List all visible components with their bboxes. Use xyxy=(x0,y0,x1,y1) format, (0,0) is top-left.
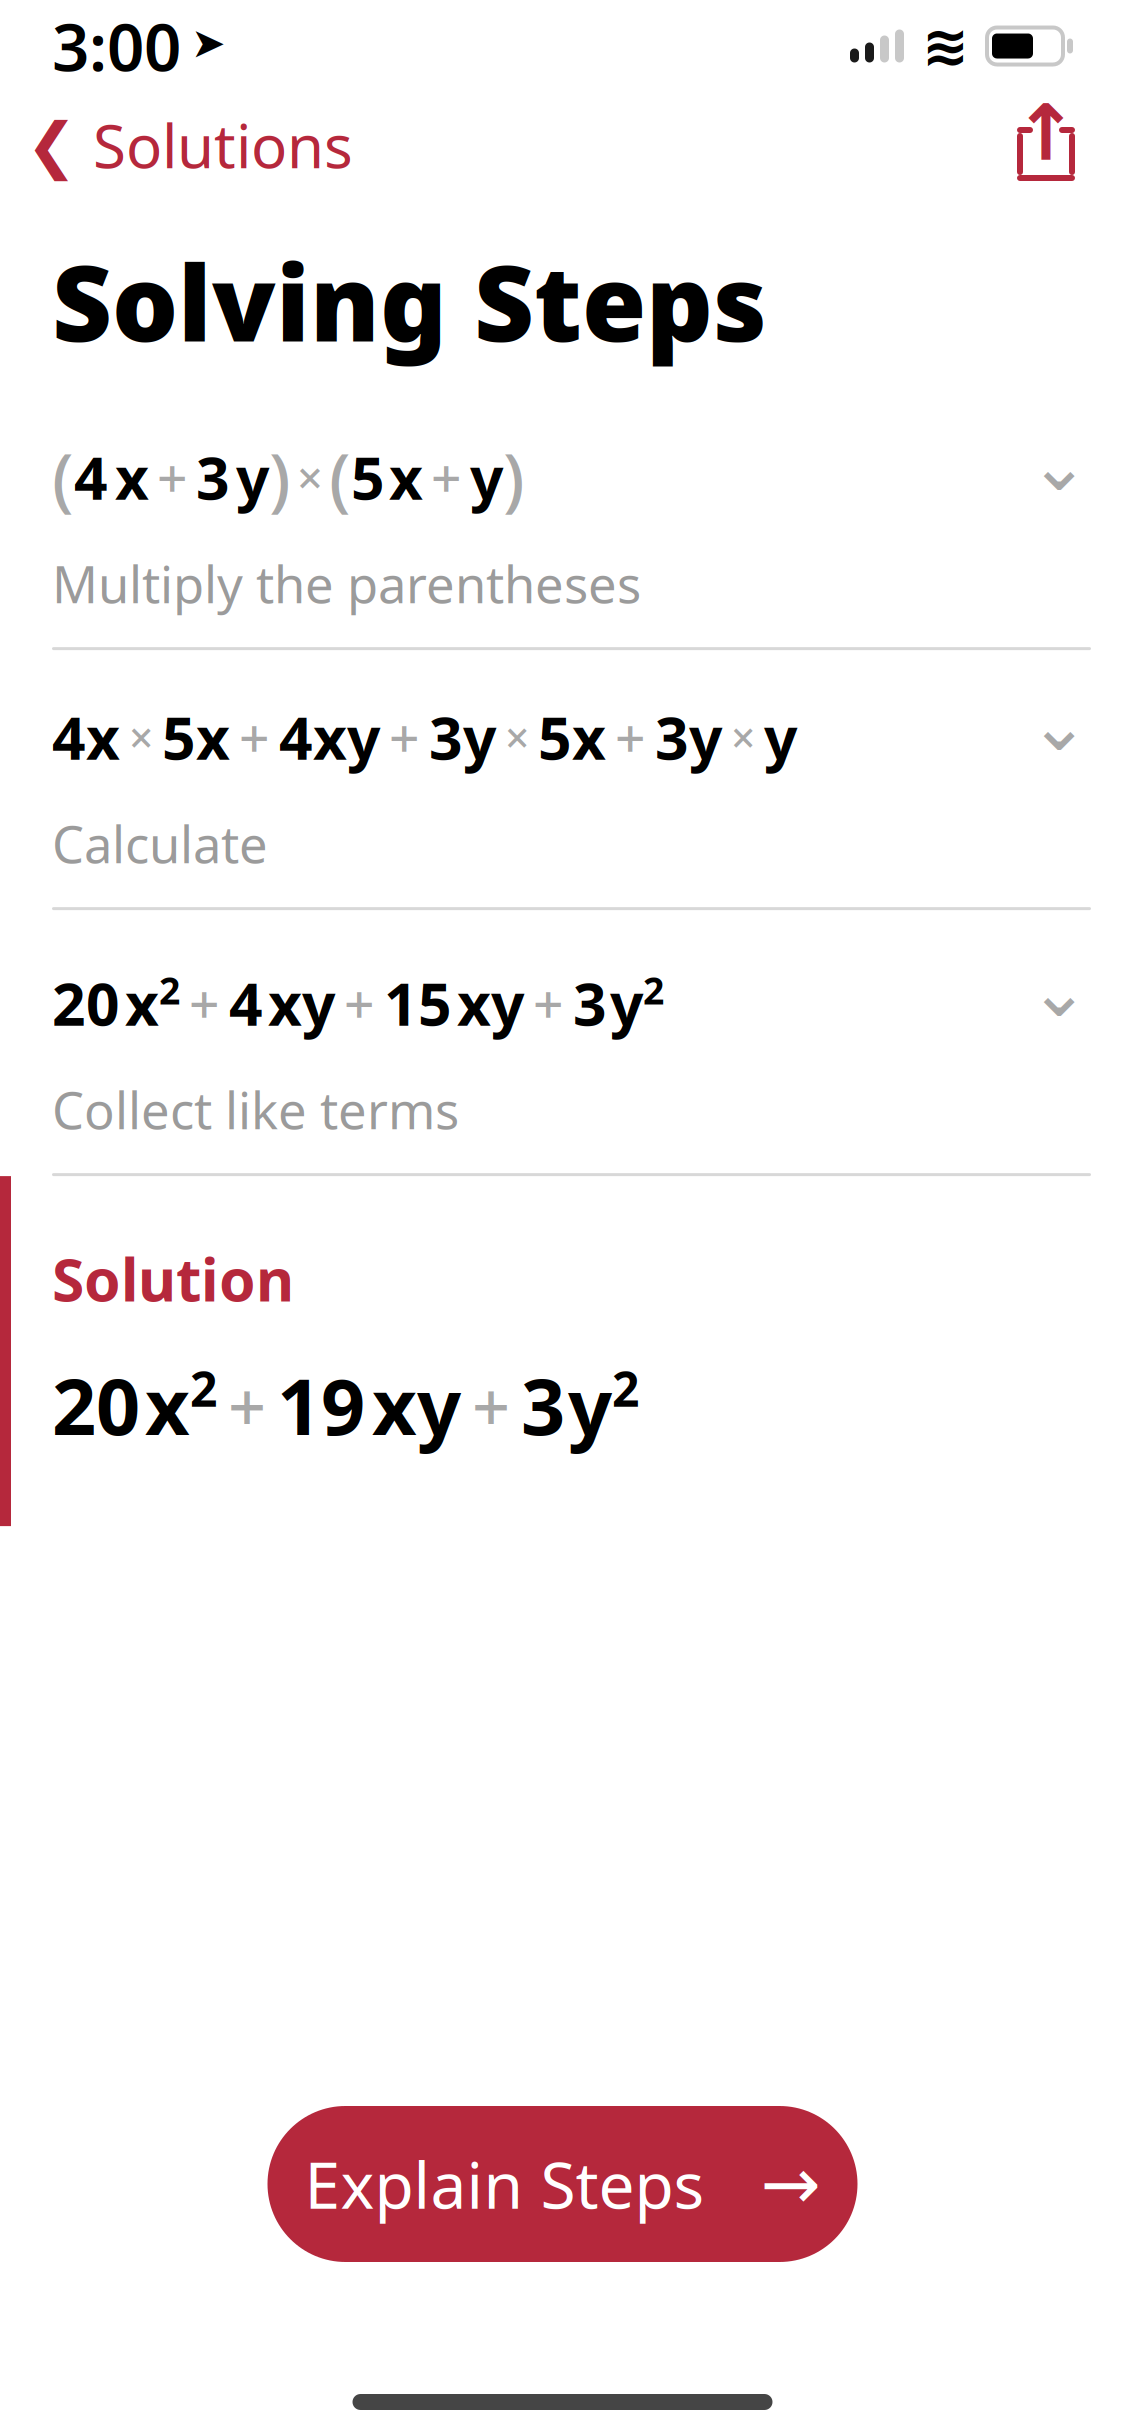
staticText: 5 xyxy=(418,964,452,1042)
staticText: x xyxy=(389,438,423,516)
staticText: 1 xyxy=(384,964,418,1042)
staticText: ⌄ xyxy=(1029,424,1089,506)
staticText: y xyxy=(568,1354,612,1456)
staticText: × xyxy=(297,447,323,507)
staticText: Calculate xyxy=(52,810,268,877)
staticText: + xyxy=(431,442,462,512)
staticText: 2 xyxy=(612,1356,639,1420)
staticText: ⌄ xyxy=(1029,950,1089,1032)
staticText: ↑ xyxy=(1013,89,1078,177)
staticText: ) xyxy=(503,431,525,523)
staticText: y xyxy=(463,698,496,776)
staticText: x xyxy=(196,698,230,776)
staticText: + xyxy=(157,442,188,512)
staticText: ( xyxy=(329,431,351,523)
staticText: y xyxy=(347,698,380,776)
staticText: 5 xyxy=(162,698,196,776)
staticText: 4 xyxy=(52,698,86,776)
staticText: 5 xyxy=(351,438,385,516)
staticText: 3:00 xyxy=(52,3,181,89)
staticText: ≋ xyxy=(922,14,969,78)
staticText: x xyxy=(457,964,491,1042)
staticText: x xyxy=(145,1354,190,1456)
staticText: ❮ xyxy=(26,110,77,180)
staticText: 2 xyxy=(190,1356,217,1420)
staticText: x xyxy=(572,698,606,776)
staticText: Solutions xyxy=(93,105,353,185)
staticText: y xyxy=(491,964,524,1042)
staticText: 2 xyxy=(159,965,180,1015)
staticText: x xyxy=(268,964,302,1042)
staticText: Solution xyxy=(52,1240,294,1318)
staticText: Explain Steps xyxy=(304,2141,704,2226)
staticText: y xyxy=(689,698,722,776)
staticText: 3 xyxy=(196,438,230,516)
staticText: 5 xyxy=(538,698,572,776)
staticText: y xyxy=(302,964,335,1042)
staticText: 4 xyxy=(279,698,313,776)
staticText: + xyxy=(189,968,220,1038)
staticText: 2 xyxy=(643,965,664,1015)
staticText: → xyxy=(760,2143,820,2225)
staticText: x xyxy=(115,438,149,516)
staticText: 9 xyxy=(321,1354,365,1456)
staticText: ( xyxy=(52,431,74,523)
staticText: 2 xyxy=(52,964,86,1042)
staticText: 0 xyxy=(96,1354,140,1456)
button[interactable]: Share xyxy=(1003,99,1125,191)
staticText: + xyxy=(615,702,646,772)
staticText: 4 xyxy=(229,964,263,1042)
button[interactable]: ❮ xyxy=(0,93,373,197)
staticText: ⌄ xyxy=(1029,684,1089,766)
staticText: × xyxy=(731,709,755,765)
staticText: + xyxy=(472,1361,510,1449)
staticText: 3 xyxy=(429,698,463,776)
staticText: + xyxy=(344,968,375,1038)
staticText: y xyxy=(470,438,503,516)
button[interactable]: Explain Steps xyxy=(267,2106,857,2262)
staticText: 3 xyxy=(521,1354,565,1456)
staticText: 3 xyxy=(573,964,607,1042)
staticText: × xyxy=(505,709,529,765)
button[interactable]: 4 xyxy=(0,650,1125,907)
staticText: x xyxy=(313,698,347,776)
staticText: 1 xyxy=(277,1354,321,1456)
staticText: Collect like terms xyxy=(52,1076,459,1143)
staticText: + xyxy=(228,1361,266,1449)
staticText: Solving Steps xyxy=(52,232,767,370)
button[interactable]: ( xyxy=(0,390,1125,647)
staticText: 0 xyxy=(86,964,120,1042)
staticText: ) xyxy=(269,431,291,523)
staticText: + xyxy=(239,702,270,772)
staticText: 4 xyxy=(74,438,108,516)
staticText: x xyxy=(125,964,159,1042)
staticText: 2 xyxy=(52,1354,96,1456)
staticText: 3 xyxy=(655,698,689,776)
staticText: y xyxy=(236,438,269,516)
staticText: ➤ xyxy=(191,19,226,66)
staticText: y xyxy=(610,964,643,1042)
staticText: × xyxy=(129,709,153,765)
staticText: Multiply the parentheses xyxy=(52,550,641,617)
staticText: + xyxy=(389,702,420,772)
button[interactable]: 2 xyxy=(0,910,1125,1173)
staticText: x xyxy=(372,1354,417,1456)
staticText: y xyxy=(764,698,797,776)
staticText: y xyxy=(417,1354,461,1456)
staticText: + xyxy=(533,968,564,1038)
staticText: x xyxy=(86,698,120,776)
